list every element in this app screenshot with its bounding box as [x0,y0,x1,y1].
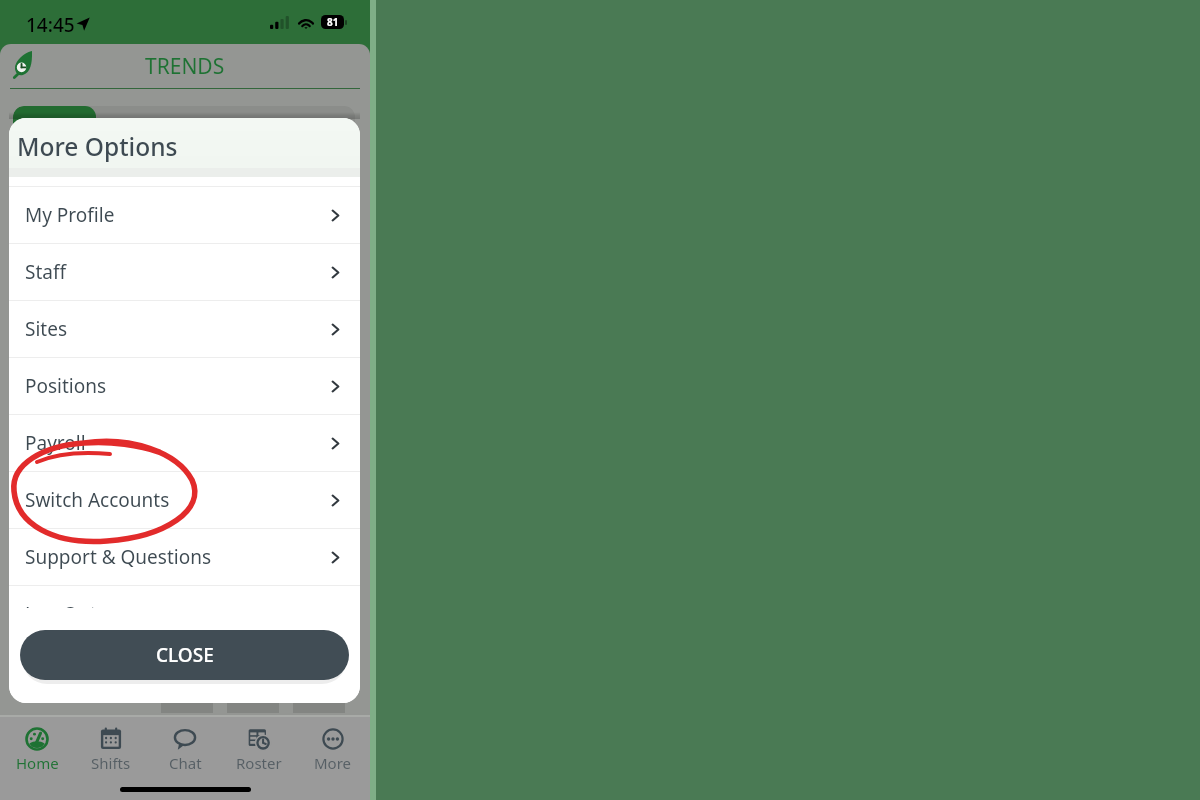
button[interactable]: CLOSE [20,630,349,680]
staticText: More Options [17,130,178,163]
button[interactable]: Positions [9,358,360,414]
staticText: Switch Accounts [25,487,170,513]
button[interactable]: Roster [222,725,296,779]
staticText: Home [16,753,59,773]
staticText: 14:45 [26,12,75,38]
staticText: Sites [25,316,68,342]
button[interactable]: Log Out [9,586,360,642]
button[interactable]: Timesheets [6,49,42,85]
button[interactable]: Payroll [9,415,360,471]
staticText: Positions [25,373,107,399]
staticText: Chat [169,753,202,773]
button[interactable]: Sites [9,301,360,357]
button[interactable]: Chat [148,725,222,779]
button[interactable]: Support & Questions [9,529,360,585]
staticText: Support & Questions [25,544,212,570]
staticText: 81 [327,15,339,29]
button[interactable]: My Profile [9,187,360,243]
staticText: Payroll [25,430,86,456]
staticText: Staff [25,259,67,285]
button[interactable]: More [296,725,370,779]
staticText: More [314,753,352,773]
button[interactable]: Shifts [74,725,148,779]
staticText: My Profile [25,202,115,228]
staticText: Log Out [25,601,97,627]
button[interactable]: Switch Accounts [9,472,360,528]
staticText: CLOSE [156,642,214,668]
staticText: Shifts [91,753,131,773]
staticText: TRENDS [145,52,225,81]
button[interactable]: Home [0,725,74,779]
button[interactable]: Staff [9,244,360,300]
staticText: Roster [236,753,282,773]
